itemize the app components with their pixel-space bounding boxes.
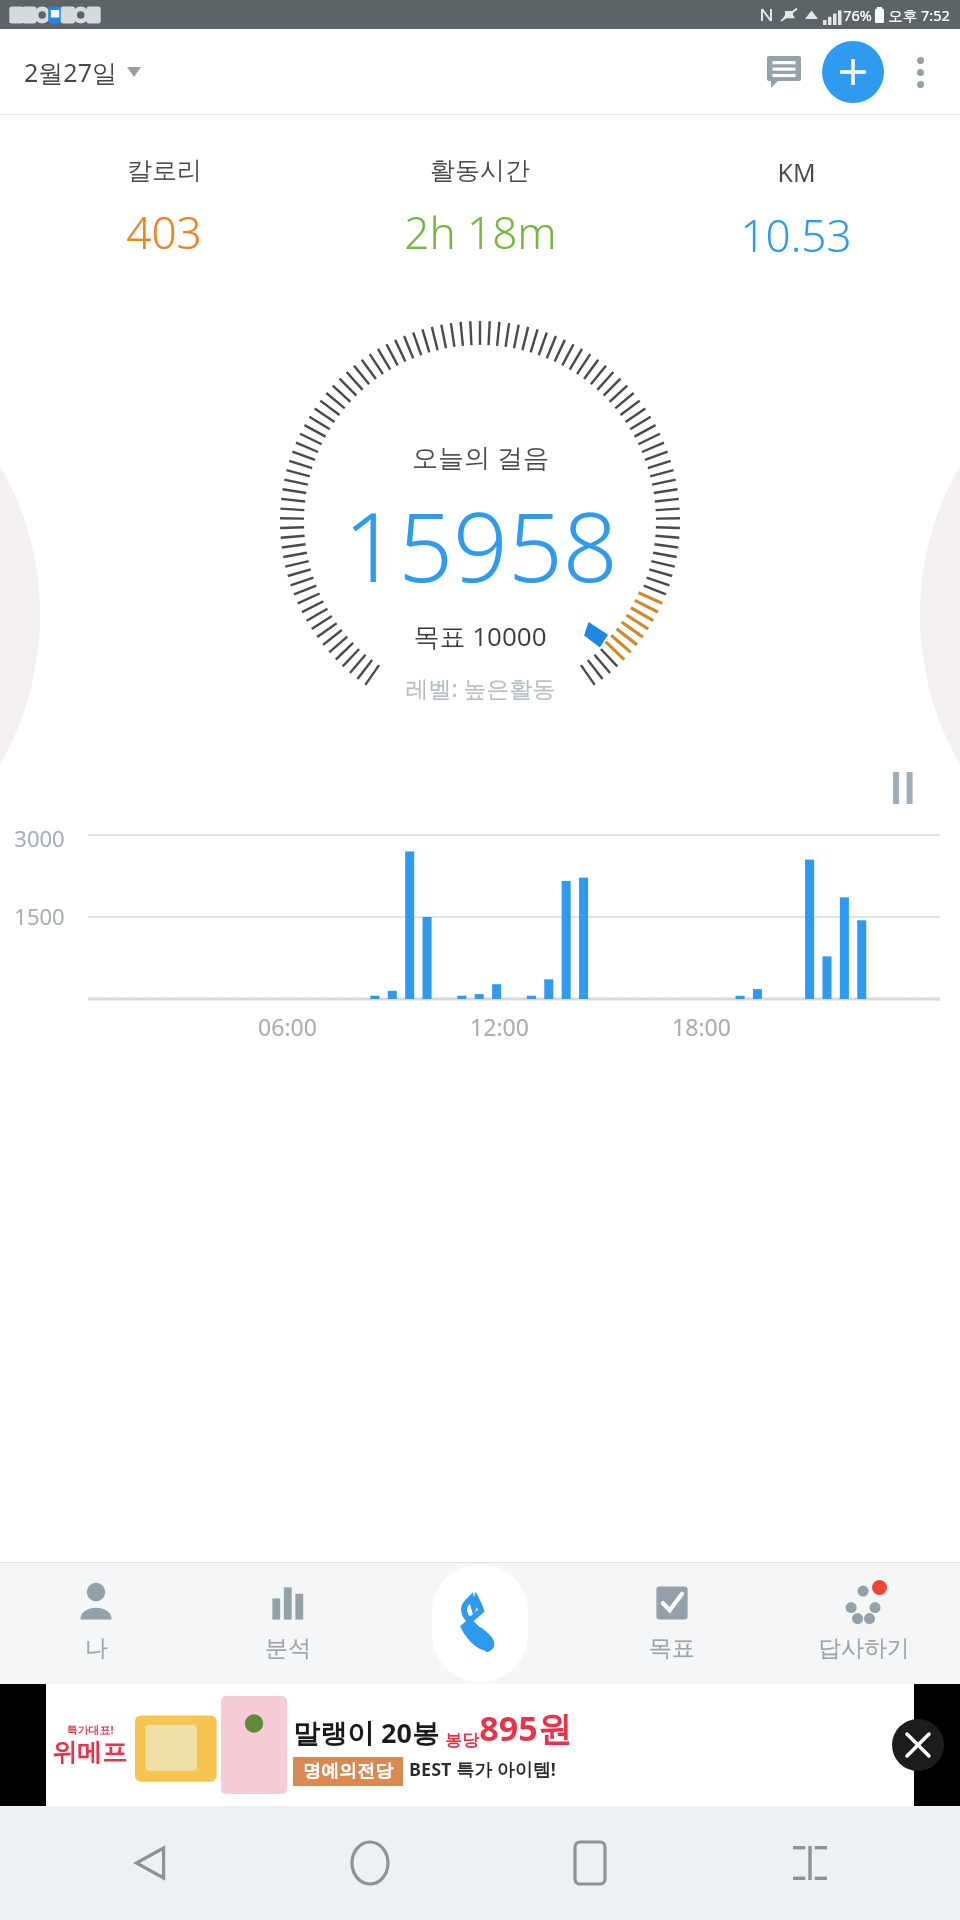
staticText: 3000 (14, 823, 65, 853)
button[interactable]: 오늘의 걸음 (0, 439, 960, 703)
button[interactable]: 목표 (576, 1562, 768, 1684)
staticText: 봉당 (445, 1730, 479, 1751)
button[interactable]: Messages (758, 46, 810, 98)
button[interactable]: 분석 (192, 1562, 384, 1684)
button[interactable]: KM (638, 151, 954, 269)
button[interactable]: Pause (876, 761, 930, 815)
staticText: KM (777, 155, 816, 189)
staticText: 895원 (479, 1705, 572, 1751)
staticText: 1500 (14, 901, 65, 931)
staticText: 2h 18m (404, 202, 557, 262)
staticText: 활동시간 (430, 155, 530, 186)
staticText: 특가대표! (66, 1722, 114, 1737)
staticText: 10.53 (740, 205, 852, 265)
staticText: 오후 7:52 (888, 5, 950, 25)
staticText: 15958 (343, 479, 618, 610)
button[interactable]: 나 (0, 1562, 192, 1684)
staticText: 목표 (649, 1634, 695, 1663)
button[interactable]: 답사하기 (768, 1562, 960, 1684)
staticText: 12:00 (470, 1011, 529, 1042)
staticText: 06:00 (258, 1011, 317, 1042)
button[interactable]: Close ad (892, 1719, 944, 1771)
staticText: 칼로리 (127, 155, 202, 186)
button[interactable]: 2월27일 (20, 49, 145, 95)
button[interactable]: 활동시간 (322, 151, 638, 266)
staticText: 답사하기 (818, 1634, 910, 1663)
staticText: 403 (126, 202, 202, 262)
button[interactable]: 특가대표! (46, 1684, 914, 1806)
staticText: 분석 (265, 1634, 311, 1663)
staticText: 레벨: 높은활동 (405, 672, 556, 703)
staticText: 나 (85, 1634, 108, 1663)
staticText: 말랭이 20봉 (293, 1714, 439, 1751)
staticText: 76% (843, 5, 872, 25)
staticText: 목표 10000 (413, 618, 547, 654)
button[interactable]: Recents (550, 1823, 630, 1903)
staticText: BEST 특가 아이템! (409, 1757, 556, 1782)
staticText: 2월27일 (24, 55, 117, 89)
button[interactable]: 칼로리 (6, 151, 322, 266)
staticText: 오늘의 걸음 (412, 439, 549, 475)
staticText: 18:00 (672, 1011, 731, 1042)
button[interactable]: More options (894, 46, 946, 98)
button[interactable]: Back (110, 1823, 190, 1903)
button[interactable]: Add (822, 41, 884, 103)
staticText: 위메프 (52, 1737, 127, 1768)
button[interactable]: Steps (432, 1564, 528, 1682)
button[interactable]: Split screen (770, 1823, 850, 1903)
button[interactable]: Home (330, 1823, 410, 1903)
staticText: 명예의전당 (303, 1760, 393, 1783)
